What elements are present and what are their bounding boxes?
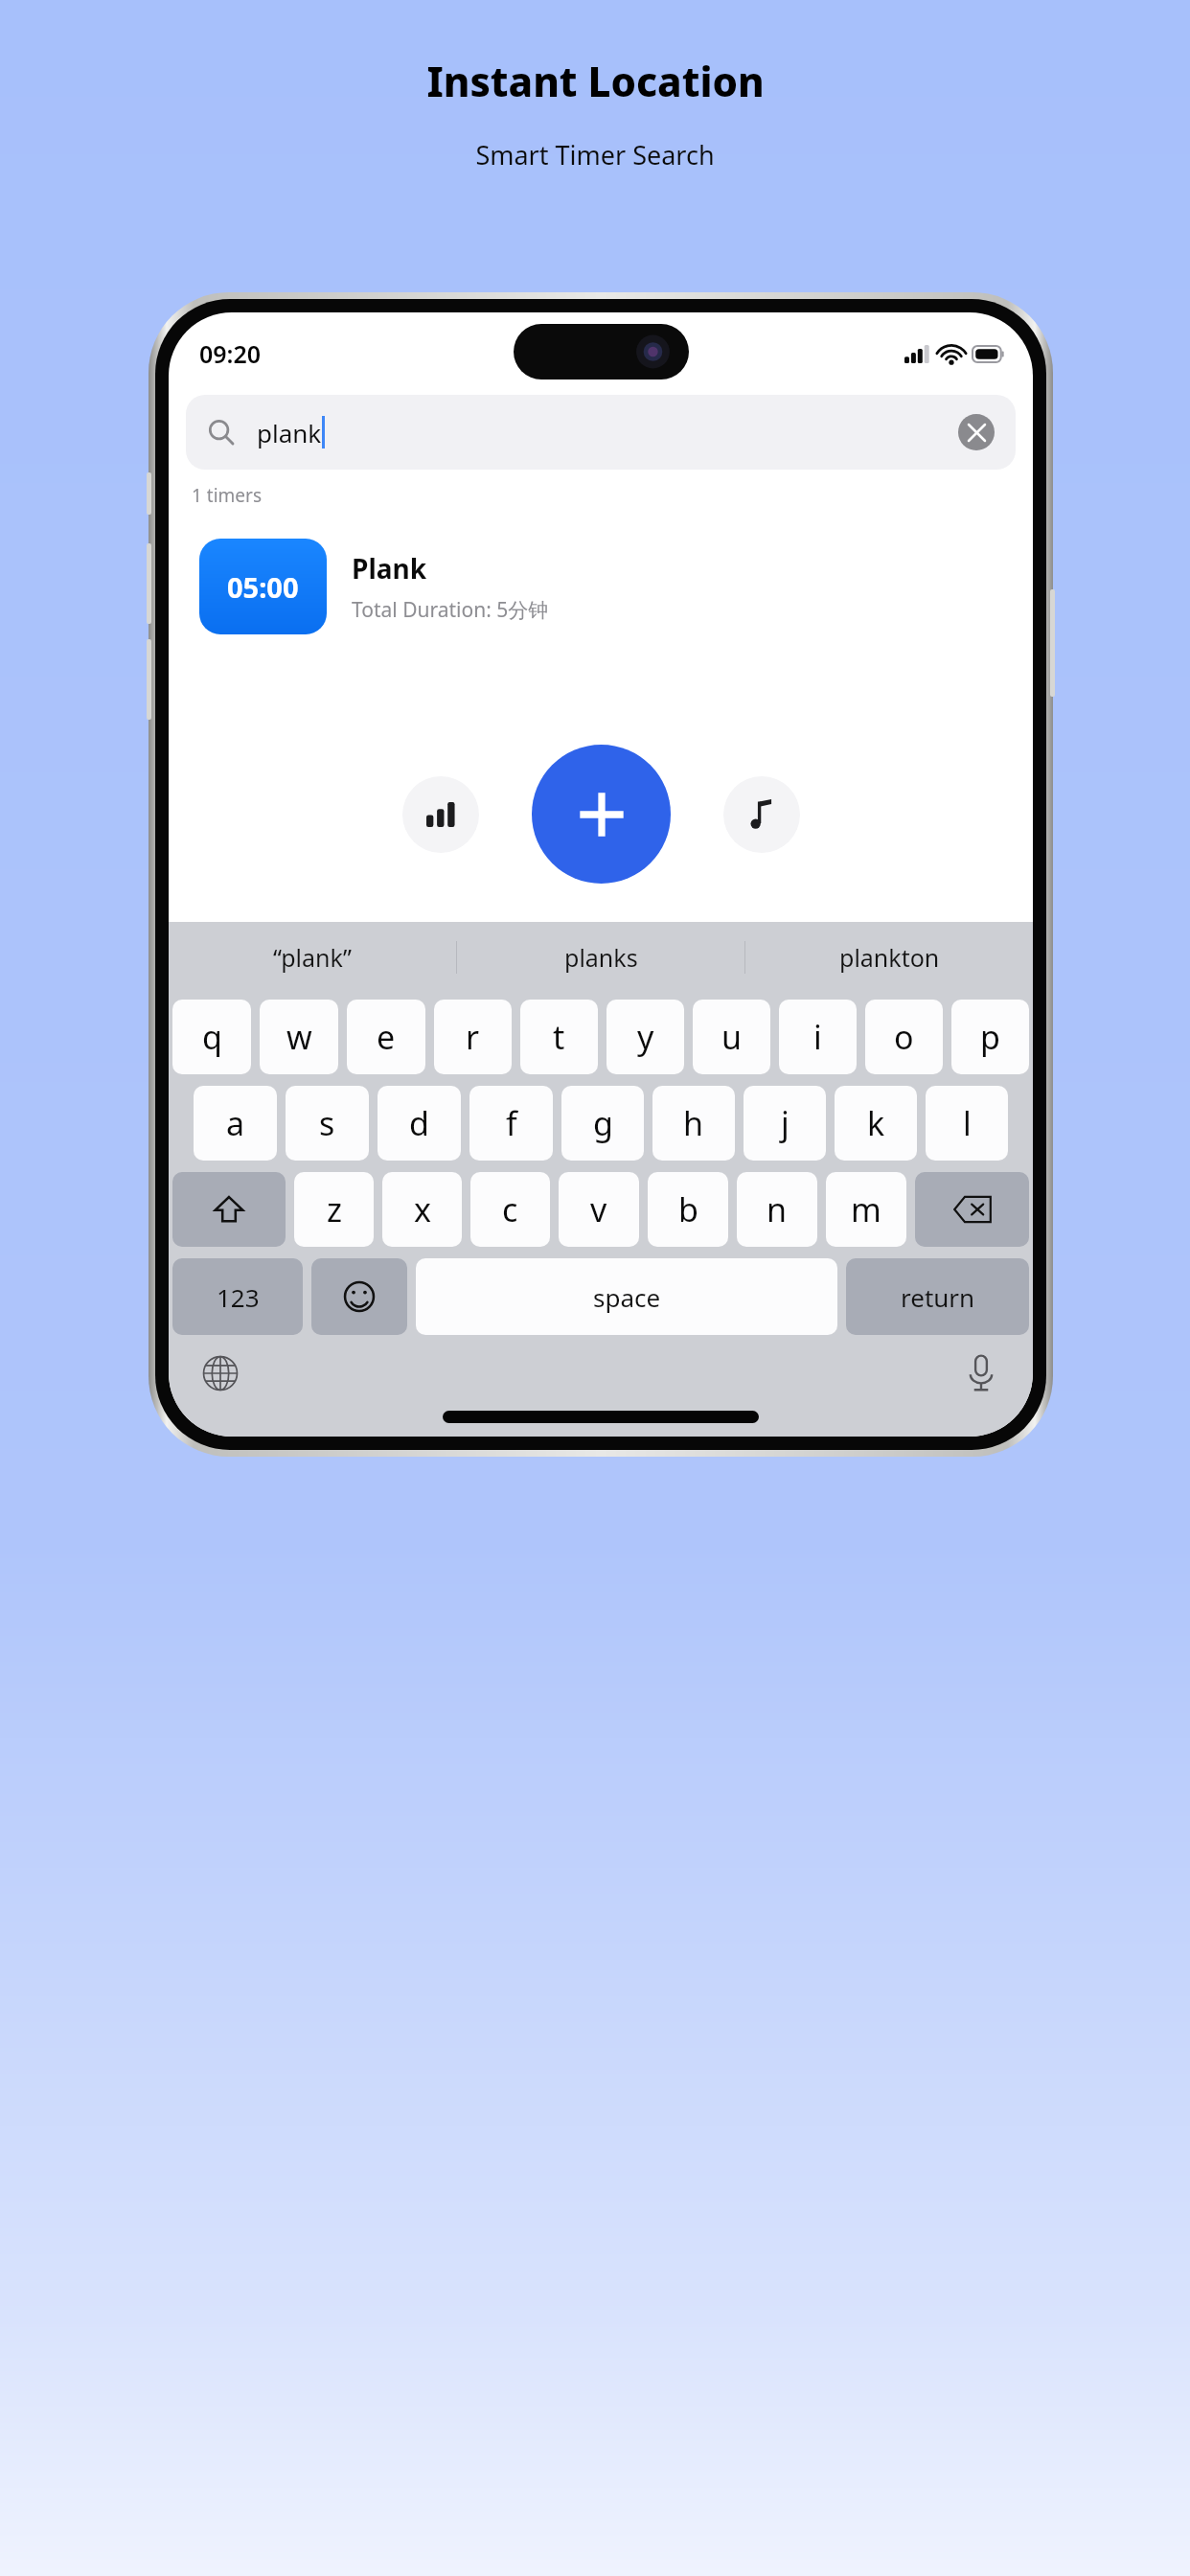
button[interactable]: e xyxy=(347,1000,425,1074)
staticText: Instant Location xyxy=(426,54,765,108)
button[interactable]: p xyxy=(951,1000,1029,1074)
button[interactable]: b xyxy=(648,1172,728,1247)
button[interactable]: v xyxy=(559,1172,639,1247)
button[interactable]: n xyxy=(737,1172,817,1247)
staticText: c xyxy=(502,1187,518,1231)
button[interactable]: i xyxy=(779,1000,857,1074)
staticText: n xyxy=(767,1187,788,1231)
button[interactable]: a xyxy=(194,1086,277,1161)
button[interactable]: r xyxy=(434,1000,512,1074)
button[interactable]: Backspace xyxy=(915,1172,1029,1247)
button[interactable]: Shift xyxy=(172,1172,286,1247)
button[interactable]: Sounds xyxy=(723,776,800,853)
staticText: p xyxy=(980,1015,1000,1059)
staticText: t xyxy=(553,1015,565,1059)
button[interactable]: Dictation xyxy=(956,1348,1006,1398)
staticText: f xyxy=(506,1101,517,1145)
staticText: Plank xyxy=(352,550,427,586)
button[interactable]: 05:00 xyxy=(186,525,1016,648)
staticText: i xyxy=(813,1015,822,1059)
staticText: w xyxy=(286,1015,312,1059)
staticText: Total Duration: 5分钟 xyxy=(352,596,549,624)
button[interactable]: plank xyxy=(186,395,1016,470)
staticText: j xyxy=(781,1101,790,1145)
staticText: plank xyxy=(257,416,322,449)
staticText: g xyxy=(593,1101,613,1145)
staticText: d xyxy=(409,1101,429,1145)
button[interactable]: s xyxy=(286,1086,369,1161)
staticText: s xyxy=(319,1101,335,1145)
staticText: Smart Timer Search xyxy=(475,137,715,172)
button[interactable]: h xyxy=(652,1086,735,1161)
staticText: return xyxy=(901,1280,975,1314)
staticText: m xyxy=(851,1187,881,1231)
staticText: 05:00 xyxy=(227,568,299,606)
staticText: “plank” xyxy=(273,941,352,974)
button[interactable]: g xyxy=(561,1086,644,1161)
staticText: 1 timers xyxy=(192,483,262,508)
staticText: v xyxy=(590,1187,607,1231)
button[interactable]: w xyxy=(260,1000,338,1074)
button[interactable]: f xyxy=(469,1086,553,1161)
staticText: space xyxy=(593,1280,661,1314)
button[interactable]: return xyxy=(846,1258,1029,1335)
button[interactable]: Add timer xyxy=(532,745,671,884)
button[interactable]: t xyxy=(520,1000,598,1074)
button[interactable]: j xyxy=(744,1086,826,1161)
staticText: k xyxy=(867,1101,885,1145)
staticText: plankton xyxy=(839,941,940,974)
button[interactable]: u xyxy=(693,1000,770,1074)
staticText: y xyxy=(637,1015,654,1059)
button[interactable]: m xyxy=(826,1172,906,1247)
staticText: z xyxy=(327,1187,342,1231)
button[interactable]: plankton xyxy=(745,922,1033,992)
button[interactable]: l xyxy=(926,1086,1008,1161)
button[interactable]: Emoji xyxy=(311,1258,407,1335)
button[interactable]: d xyxy=(378,1086,461,1161)
staticText: o xyxy=(894,1015,914,1059)
button[interactable]: c xyxy=(470,1172,550,1247)
button[interactable]: o xyxy=(865,1000,943,1074)
staticText: 09:20 xyxy=(199,337,262,370)
button[interactable]: z xyxy=(294,1172,374,1247)
button[interactable]: q xyxy=(172,1000,251,1074)
button[interactable]: y xyxy=(606,1000,684,1074)
button[interactable]: k xyxy=(835,1086,917,1161)
button[interactable]: Statistics xyxy=(402,776,479,853)
staticText: r xyxy=(466,1015,480,1059)
staticText: 123 xyxy=(217,1280,260,1314)
button[interactable]: Change keyboard language xyxy=(195,1348,245,1398)
staticText: e xyxy=(377,1015,396,1059)
staticText: b xyxy=(678,1187,698,1231)
staticText: planks xyxy=(564,941,638,974)
button[interactable]: space xyxy=(416,1258,837,1335)
staticText: l xyxy=(963,1101,972,1145)
button[interactable]: planks xyxy=(457,922,744,992)
button[interactable]: 123 xyxy=(172,1258,303,1335)
button[interactable]: Clear search xyxy=(958,414,995,450)
button[interactable]: x xyxy=(382,1172,462,1247)
staticText: h xyxy=(683,1101,704,1145)
staticText: u xyxy=(721,1015,743,1059)
staticText: q xyxy=(202,1015,222,1059)
staticText: x xyxy=(414,1187,431,1231)
button[interactable]: “plank” xyxy=(169,922,456,992)
staticText: a xyxy=(226,1101,245,1145)
